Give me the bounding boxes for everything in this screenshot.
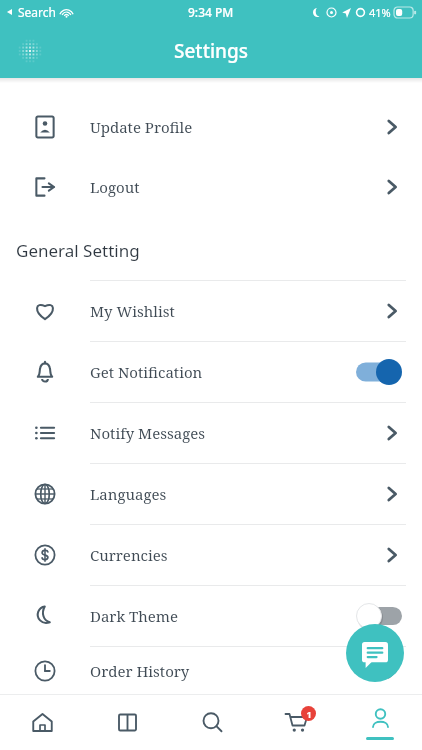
staticText: 9:34 PM (188, 4, 234, 20)
staticText: Currencies (90, 545, 382, 565)
button[interactable]: Categories (85, 695, 170, 750)
staticText: Settings (174, 38, 248, 64)
staticText: Logout (90, 177, 382, 197)
button[interactable]: Logout (0, 157, 422, 217)
button[interactable]: Get Notification (0, 342, 422, 402)
staticText: Search (18, 4, 56, 20)
button[interactable]: My Wishlist (0, 281, 422, 341)
button[interactable]: Notify Messages (0, 403, 422, 463)
button[interactable]: Dark Theme (0, 586, 422, 646)
button[interactable]: Update Profile (0, 97, 422, 157)
button[interactable]: Cart (254, 695, 338, 750)
staticText: Order History (90, 661, 382, 681)
button[interactable]: Search (170, 695, 254, 750)
button[interactable]: Languages (0, 464, 422, 524)
button[interactable]: Currencies (0, 525, 422, 585)
staticText: Get Notification (90, 362, 356, 382)
staticText: Update Profile (90, 117, 382, 137)
staticText: 41% (369, 5, 391, 20)
button[interactable]: Chat (346, 624, 404, 682)
staticText: Dark Theme (90, 606, 356, 626)
button[interactable]: Profile (338, 695, 422, 750)
staticText: 1 (306, 708, 312, 720)
button[interactable]: Order History (0, 647, 422, 694)
staticText: General Setting (16, 239, 140, 262)
button[interactable]: Home (0, 695, 85, 750)
staticText: My Wishlist (90, 301, 382, 321)
button[interactable]: Menu (10, 31, 50, 71)
staticText: Notify Messages (90, 423, 382, 443)
staticText: Languages (90, 484, 382, 504)
